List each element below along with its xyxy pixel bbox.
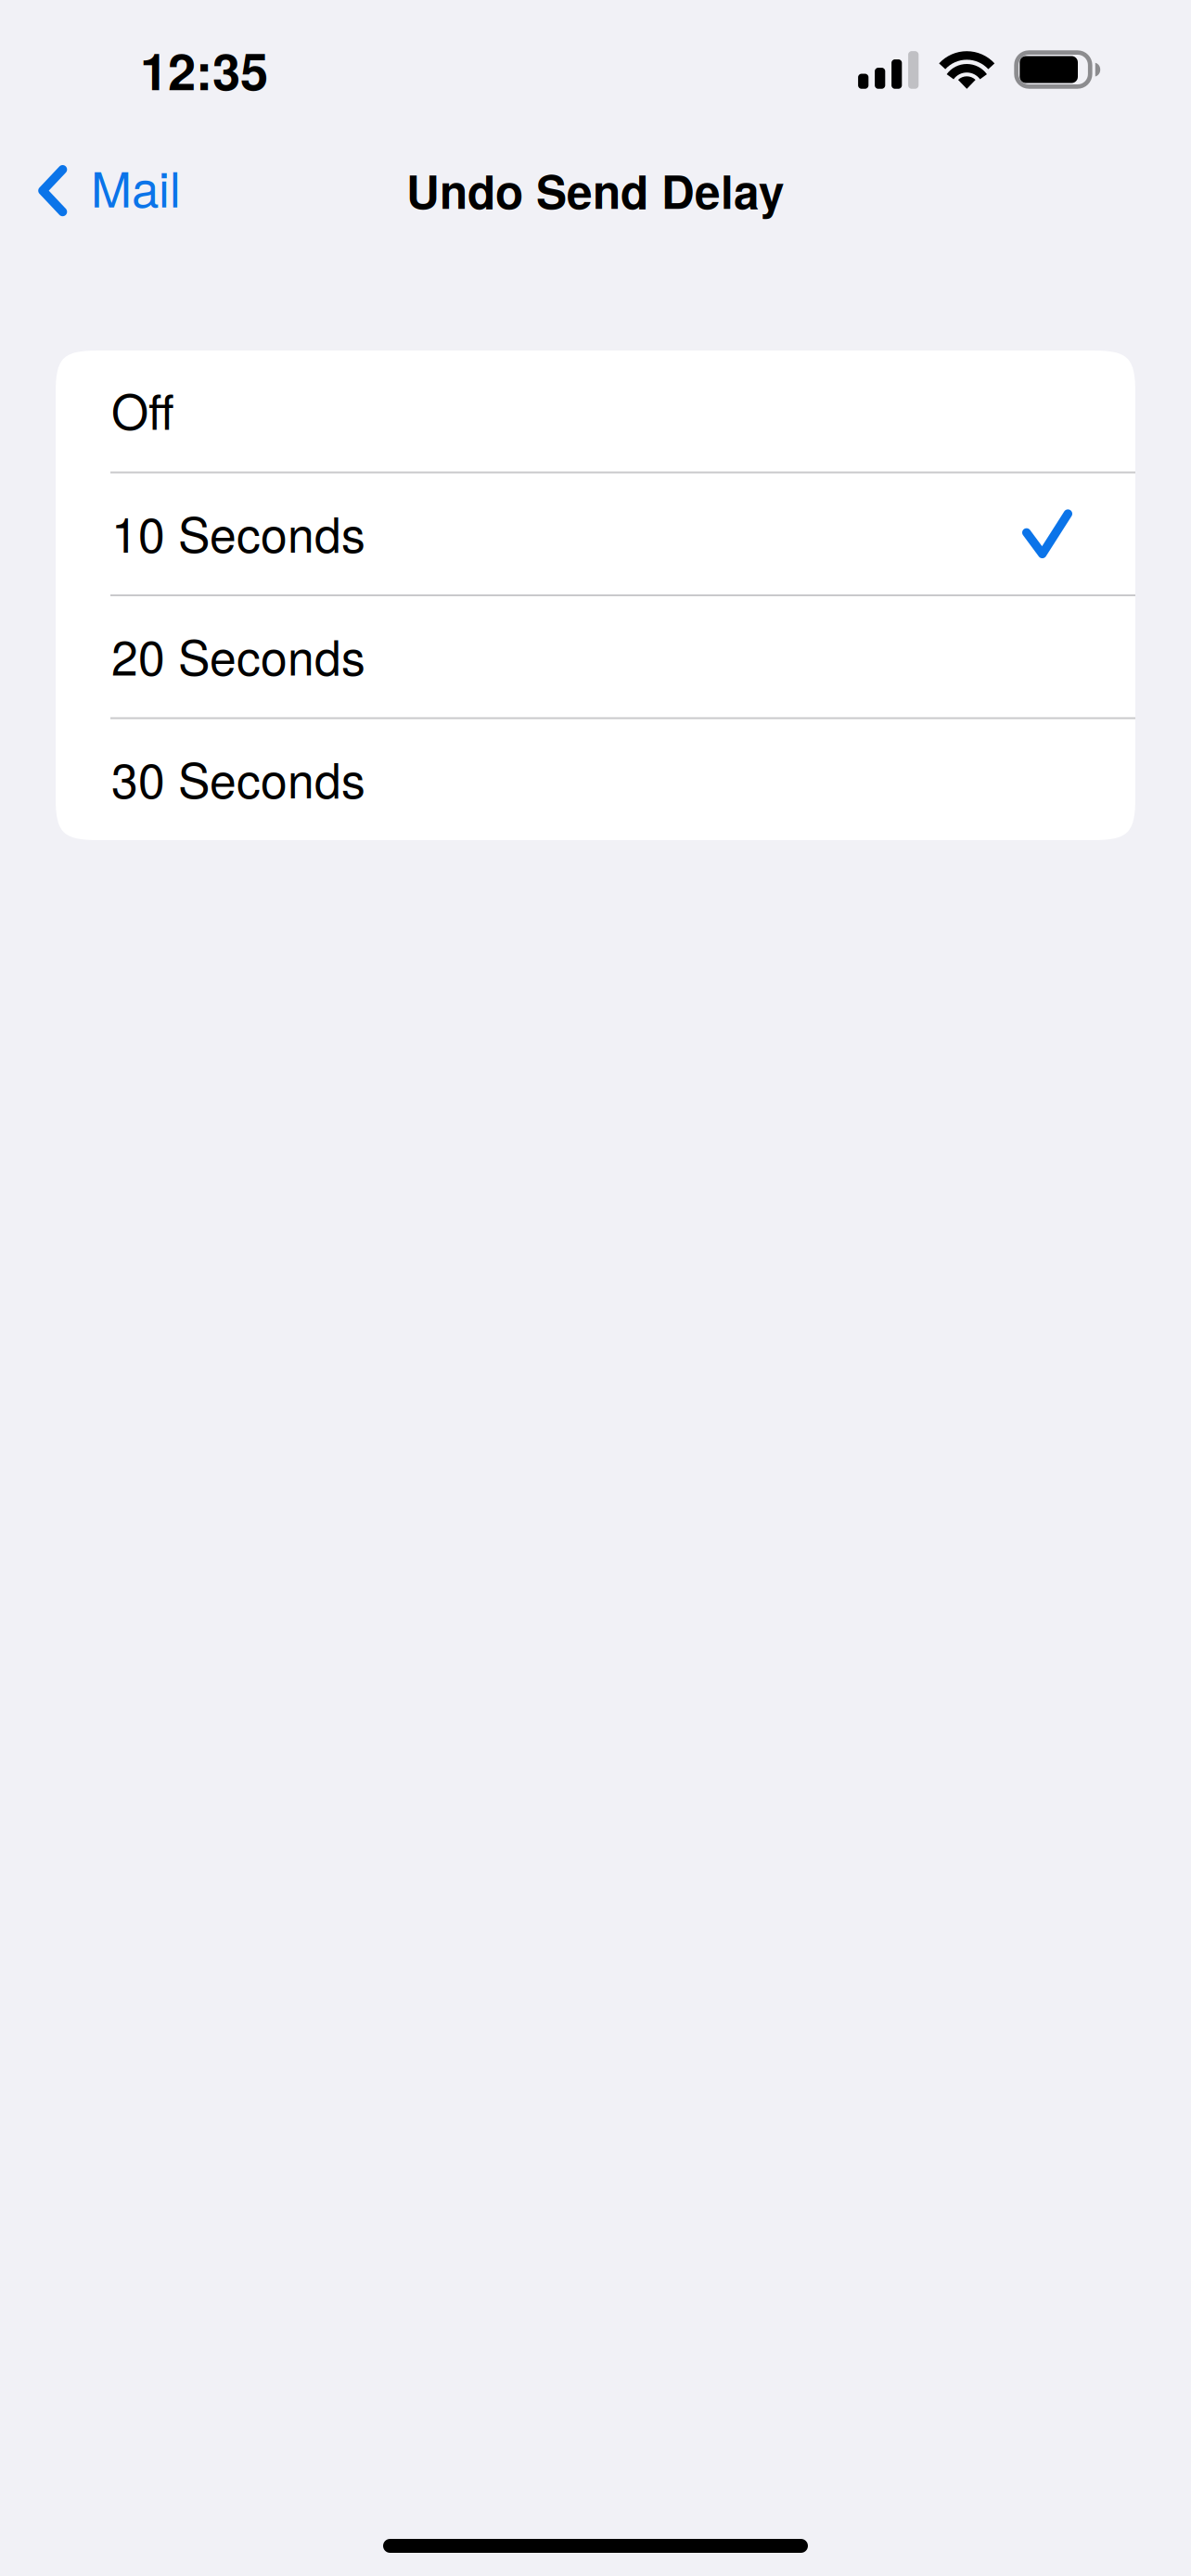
button[interactable]: 20 Seconds	[56, 596, 1135, 719]
button[interactable]: 10 Seconds	[56, 473, 1135, 596]
staticText: 12:35	[140, 33, 268, 106]
staticText: Off	[111, 375, 174, 443]
staticText: 20 Seconds	[111, 621, 365, 689]
staticText: 30 Seconds	[111, 743, 365, 812]
staticText: Mail	[91, 151, 181, 221]
button[interactable]: Mail	[0, 89, 209, 291]
staticText: 10 Seconds	[111, 498, 365, 566]
button[interactable]: Off	[56, 351, 1135, 473]
staticText: Undo Send Delay	[406, 157, 785, 223]
button[interactable]: 30 Seconds	[56, 719, 1135, 840]
